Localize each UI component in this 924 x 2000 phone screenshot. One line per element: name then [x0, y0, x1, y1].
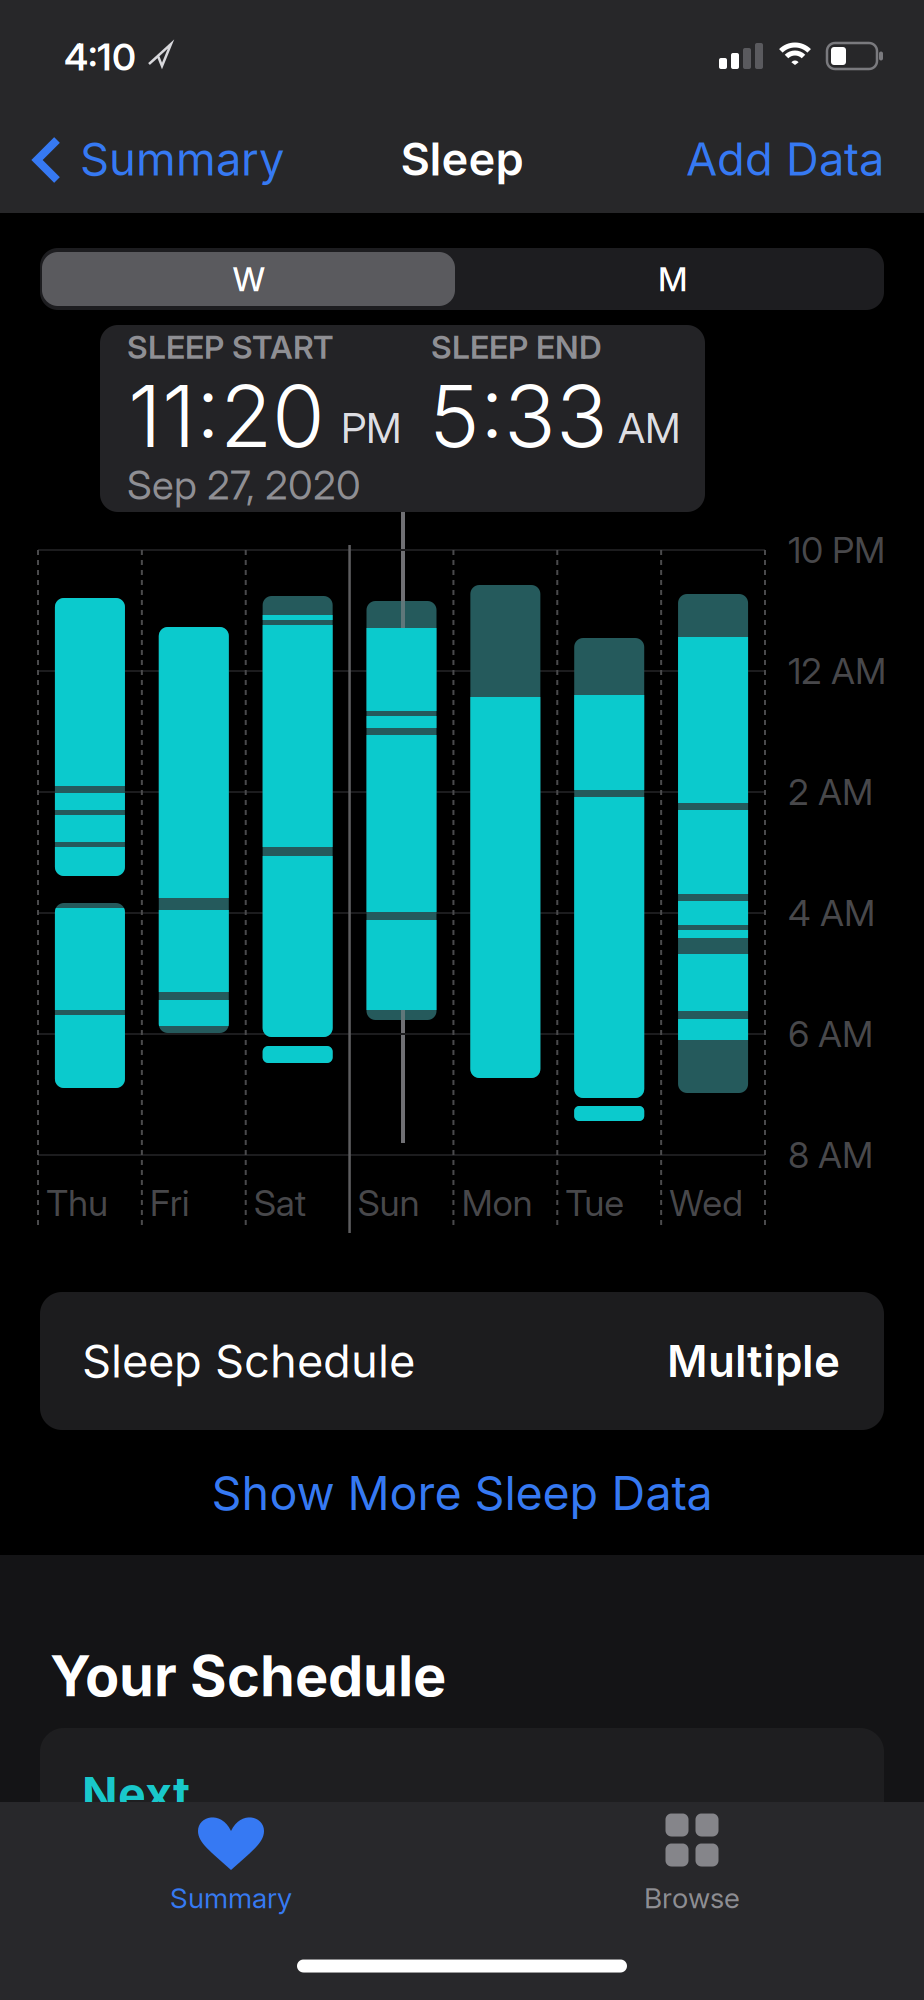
staticText: 2 AM [788, 771, 873, 813]
staticText: 12 AM [788, 650, 886, 692]
staticText: Add Data [686, 132, 884, 186]
staticText: Your Schedule [50, 1643, 446, 1709]
staticText: 4:10 [64, 35, 136, 79]
staticText: Mon [461, 1182, 532, 1224]
staticText: Wed [669, 1182, 743, 1224]
staticText: 5:33 [429, 366, 608, 466]
staticText: Next [82, 1766, 190, 1822]
staticText: 6 AM [788, 1013, 873, 1055]
staticText: 10 PM [788, 529, 885, 571]
staticText: SLEEP END [431, 328, 602, 366]
staticText: 11:20 [128, 366, 325, 466]
staticText: M [658, 259, 688, 299]
staticText: 4 AM [788, 892, 875, 934]
staticText: Sleep [400, 132, 523, 186]
staticText: Summary [170, 1881, 292, 1914]
staticText: Multiple [667, 1335, 840, 1387]
staticText: PM [341, 404, 402, 452]
staticText: Browse [644, 1881, 740, 1914]
staticText: Show More Sleep Data [211, 1465, 712, 1521]
staticText: Sleep Schedule [82, 1334, 415, 1388]
staticText: Thu [46, 1182, 108, 1224]
staticText: Tue [565, 1182, 624, 1224]
staticText: Sat [254, 1182, 306, 1224]
staticText: W [232, 259, 265, 299]
staticText: 8 AM [788, 1134, 873, 1176]
staticText: Sun [358, 1182, 420, 1224]
staticText: Fri [150, 1182, 190, 1224]
staticText: Summary [80, 132, 284, 186]
staticText: Sep 27, 2020 [127, 461, 361, 509]
staticText: AM [618, 404, 681, 452]
staticText: SLEEP START [127, 328, 334, 366]
